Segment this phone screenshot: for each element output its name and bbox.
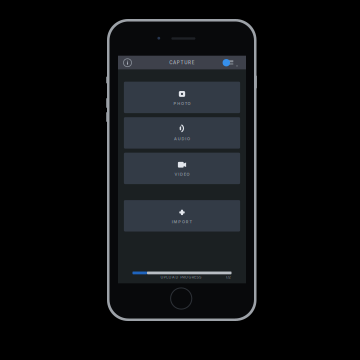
- staticText: AUDIO: [174, 136, 190, 141]
- button[interactable]: AUDIO: [124, 117, 240, 149]
- staticText: CAPTURE: [169, 60, 195, 65]
- staticText: UPLOAD PROGRESS: [160, 275, 201, 279]
- staticText: IMPORT: [172, 219, 192, 224]
- staticText: VIDEO: [174, 172, 189, 177]
- button[interactable]: PHOTO: [124, 82, 240, 113]
- staticText: 1/2: [225, 275, 230, 279]
- button[interactable]: Account: [219, 56, 239, 70]
- button[interactable]: Information: [121, 56, 134, 70]
- staticText: PHOTO: [173, 101, 190, 106]
- button[interactable]: IMPORT: [124, 200, 240, 231]
- button[interactable]: VIDEO: [124, 153, 240, 184]
